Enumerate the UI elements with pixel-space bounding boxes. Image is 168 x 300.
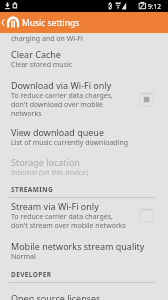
staticText: Music settings (22, 17, 80, 29)
staticText: Normal (11, 252, 141, 262)
button[interactable]: View download queue (0, 118, 168, 148)
button[interactable]: Navigate up (0, 16, 22, 29)
staticText: Clear stored music (11, 60, 141, 70)
button[interactable]: Mobile networks stream quality (0, 230, 168, 262)
staticText: Mobile networks stream quality (11, 240, 145, 252)
staticText: View download queue (11, 126, 104, 138)
staticText: Internal (on this device) (11, 168, 141, 178)
staticText: Stream via Wi-Fi only (11, 200, 99, 212)
button[interactable]: Download via Wi-Fi only (0, 70, 168, 118)
button[interactable]: Clear Cache (0, 43, 168, 70)
staticText: Open source licenses (11, 292, 101, 300)
button[interactable]: Storage location (0, 148, 168, 178)
staticText: Download via Wi-Fi only (11, 79, 112, 91)
button[interactable]: charging and on Wi-Fi (0, 33, 168, 43)
staticText: To reduce carrier data charges, don't do… (11, 91, 125, 118)
button[interactable]: Toggle Download via Wi-Fi only (134, 87, 158, 111)
button[interactable]: Toggle Stream via Wi-Fi only (134, 203, 158, 227)
button[interactable]: Stream via Wi-Fi only (0, 198, 168, 230)
staticText: 9:12 (148, 2, 161, 11)
staticText: Clear Cache (11, 48, 61, 60)
staticText: To reduce carrier data charges, don't st… (11, 212, 127, 230)
button[interactable]: Open source licenses (0, 283, 168, 300)
staticText: List of music currently downloading (11, 138, 141, 148)
staticText: DEVELOPER (11, 270, 52, 279)
staticText: STREAMING (11, 185, 53, 194)
staticText: Storage location (11, 156, 80, 168)
staticText: charging and on Wi-Fi (11, 34, 83, 44)
